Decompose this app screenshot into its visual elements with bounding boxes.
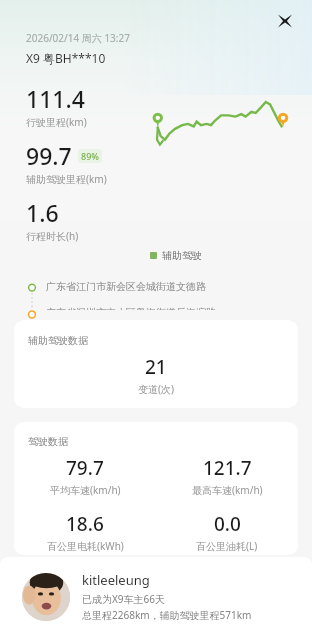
button[interactable]: 辅助驾驶数据 xyxy=(14,320,298,408)
staticText: 行驶里程(km) xyxy=(26,115,87,129)
staticText: X9 粤BH***10 xyxy=(26,50,106,66)
staticText: 99.7 xyxy=(26,140,72,171)
staticText: 121.7 xyxy=(203,455,252,481)
button[interactable]: Profile photo xyxy=(22,573,70,621)
staticText: 驾驶数据 xyxy=(28,435,68,448)
staticText: 2026/02/14 周六 13:27 xyxy=(26,31,130,45)
staticText: 平均车速(km/h) xyxy=(50,483,121,497)
button[interactable]: Close xyxy=(268,4,302,38)
staticText: 111.4 xyxy=(26,83,85,114)
staticText: 广东省江门市新会区会城街道文德路 xyxy=(46,280,206,293)
staticText: 79.7 xyxy=(66,455,104,481)
staticText: 辅助驾驶 xyxy=(162,249,202,262)
staticText: 变道(次) xyxy=(138,382,174,396)
staticText: 1.6 xyxy=(26,197,59,228)
staticText: 辅助驾驶里程(km) xyxy=(26,172,107,186)
staticText: 0.0 xyxy=(214,511,241,537)
button[interactable]: 驾驶数据 xyxy=(14,422,298,555)
button[interactable]: Profile photo xyxy=(0,557,312,636)
staticText: 辅助驾驶数据 xyxy=(28,334,88,347)
staticText: 已成为X9车主66天 xyxy=(82,592,166,606)
staticText: 21 xyxy=(145,354,167,380)
staticText: 百公里油耗(L) xyxy=(196,539,258,553)
staticText: 18.6 xyxy=(66,511,104,537)
staticText: 百公里电耗(kWh) xyxy=(47,539,124,553)
staticText: 广东省深圳市南山区粤海街道后海滨路 xyxy=(46,306,216,310)
staticText: 89% xyxy=(81,150,99,162)
staticText: 行程时长(h) xyxy=(26,229,79,243)
staticText: kitleeleung xyxy=(82,571,150,589)
staticText: 最高车速(km/h) xyxy=(192,483,263,497)
staticText: 总里程2268km，辅助驾驶里程571km xyxy=(82,608,252,622)
